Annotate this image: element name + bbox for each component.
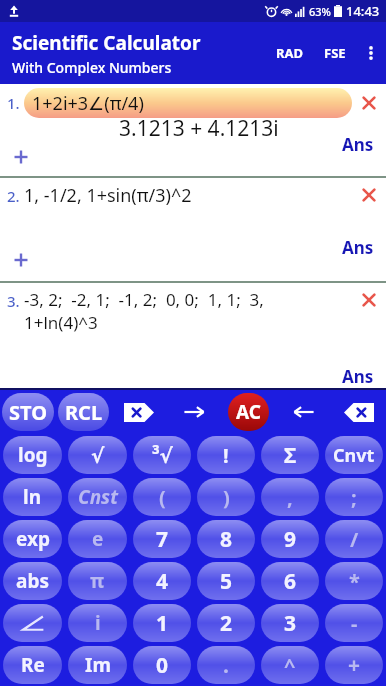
- button[interactable]: 1: [133, 604, 191, 642]
- button[interactable]: .: [197, 646, 255, 684]
- staticText: Re: [21, 652, 45, 678]
- staticText: 1+ln(4)^3: [24, 311, 98, 334]
- staticText: Ans: [342, 236, 374, 259]
- button[interactable]: -: [325, 604, 383, 642]
- staticText: 1, -1/2, 1+sin(π/3)^2: [24, 183, 352, 208]
- button[interactable]: Delete entry 2: [352, 183, 386, 207]
- staticText: *: [349, 568, 360, 595]
- staticText: ): [223, 484, 230, 511]
- button[interactable]: Angle: [3, 604, 62, 642]
- button[interactable]: Delete entry 1: [352, 88, 386, 118]
- staticText: STO: [9, 399, 47, 426]
- staticText: Σ: [284, 441, 297, 470]
- staticText: 9: [284, 525, 297, 554]
- staticText: AC: [236, 399, 261, 425]
- button[interactable]: Cnvt: [325, 436, 383, 474]
- button[interactable]: 8: [197, 520, 255, 558]
- button[interactable]: Cnst: [68, 478, 127, 516]
- staticText: 8: [220, 525, 233, 554]
- button[interactable]: STO: [2, 393, 54, 431]
- button[interactable]: Im: [68, 646, 127, 684]
- staticText: ;: [351, 484, 357, 511]
- staticText: ³√: [152, 442, 173, 469]
- staticText: 3.: [7, 291, 24, 311]
- staticText: 5: [220, 567, 233, 596]
- staticText: 1+2i+3∠(π/4): [32, 91, 144, 116]
- staticText: 1: [156, 609, 169, 638]
- button[interactable]: 1.: [0, 84, 386, 176]
- staticText: π: [90, 568, 105, 594]
- button[interactable]: ): [197, 478, 255, 516]
- button[interactable]: 3.: [0, 283, 386, 388]
- staticText: -: [351, 610, 358, 637]
- staticText: 6: [284, 567, 297, 596]
- staticText: ln: [23, 484, 42, 510]
- button[interactable]: abs: [3, 562, 62, 600]
- staticText: (: [159, 484, 166, 511]
- staticText: /: [350, 526, 359, 553]
- staticText: RCL: [65, 399, 103, 426]
- button[interactable]: AC: [228, 393, 269, 431]
- button[interactable]: ^: [261, 646, 319, 684]
- button[interactable]: More options: [356, 38, 386, 68]
- button[interactable]: ³√: [133, 436, 191, 474]
- staticText: With Complex Numbers: [12, 58, 172, 77]
- staticText: exp: [16, 526, 50, 552]
- button[interactable]: 9: [261, 520, 319, 558]
- button[interactable]: *: [325, 562, 383, 600]
- button[interactable]: Delete entry 3: [352, 288, 386, 312]
- button[interactable]: ,: [261, 478, 319, 516]
- staticText: log: [18, 442, 48, 468]
- button[interactable]: 0: [133, 646, 191, 684]
- staticText: 2.: [7, 186, 24, 206]
- button[interactable]: exp: [3, 520, 62, 558]
- staticText: 14:43: [346, 2, 380, 20]
- staticText: 0: [156, 651, 169, 680]
- button[interactable]: 7: [133, 520, 191, 558]
- button[interactable]: Move left: [276, 390, 331, 434]
- button[interactable]: FSE: [314, 36, 356, 70]
- staticText: i: [95, 610, 101, 636]
- staticText: 7: [156, 525, 169, 554]
- button[interactable]: log: [3, 436, 62, 474]
- staticText: Ans: [342, 365, 374, 388]
- button[interactable]: e: [68, 520, 127, 558]
- button[interactable]: +: [325, 646, 383, 684]
- button[interactable]: !: [197, 436, 255, 474]
- button[interactable]: √: [68, 436, 127, 474]
- staticText: e: [92, 526, 104, 552]
- button[interactable]: ln: [3, 478, 62, 516]
- staticText: Cnst: [78, 484, 118, 510]
- staticText: RAD: [276, 44, 304, 62]
- button[interactable]: π: [68, 562, 127, 600]
- button[interactable]: Re: [3, 646, 62, 684]
- button[interactable]: 2: [197, 604, 255, 642]
- button[interactable]: /: [325, 520, 383, 558]
- staticText: ,: [287, 484, 293, 511]
- button[interactable]: RCL: [58, 393, 109, 431]
- button[interactable]: i: [68, 604, 127, 642]
- button[interactable]: 2.: [0, 178, 386, 281]
- staticText: ^: [284, 652, 296, 679]
- staticText: Scientific Calculator: [12, 30, 201, 56]
- staticText: 63%: [309, 4, 331, 19]
- button[interactable]: 4: [133, 562, 191, 600]
- button[interactable]: Σ: [261, 436, 319, 474]
- staticText: Im: [85, 652, 111, 678]
- button[interactable]: ;: [325, 478, 383, 516]
- staticText: -3, 2; -2, 1; -1, 2; 0, 0; 1, 1; 3,: [24, 288, 264, 311]
- staticText: +: [348, 651, 361, 680]
- button[interactable]: RAD: [266, 36, 314, 70]
- button[interactable]: (: [133, 478, 191, 516]
- button[interactable]: 6: [261, 562, 319, 600]
- button[interactable]: Delete forward: [111, 390, 166, 434]
- staticText: 1.: [7, 93, 24, 113]
- staticText: !: [223, 442, 229, 469]
- button[interactable]: 5: [197, 562, 255, 600]
- button[interactable]: 3: [261, 604, 319, 642]
- button[interactable]: Move right: [166, 390, 221, 434]
- staticText: .: [223, 651, 229, 680]
- staticText: abs: [16, 568, 49, 594]
- staticText: 4: [156, 567, 169, 596]
- button[interactable]: Backspace: [331, 390, 386, 434]
